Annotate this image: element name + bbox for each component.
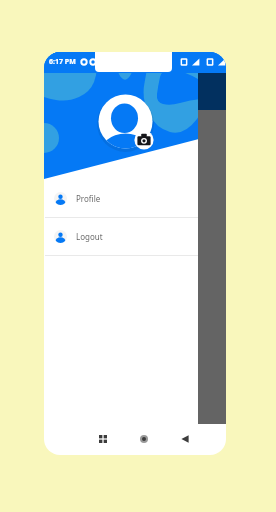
button[interactable]: Back xyxy=(177,431,193,447)
staticText: 6:17 PM xyxy=(49,57,76,67)
button[interactable]: Profile xyxy=(45,180,198,217)
button[interactable]: Logout xyxy=(45,218,198,255)
staticText: Logout xyxy=(76,231,103,242)
button[interactable]: Home xyxy=(136,431,152,447)
button[interactable]: Recents xyxy=(95,431,111,447)
staticText: Profile xyxy=(76,193,101,204)
